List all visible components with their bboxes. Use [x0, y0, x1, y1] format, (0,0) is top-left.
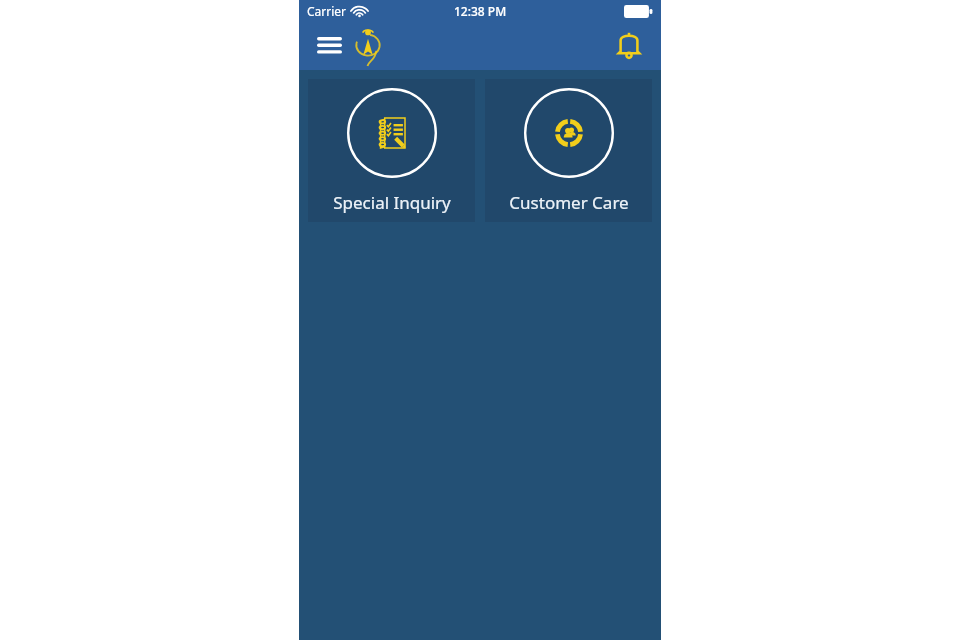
- staticText: Customer Care: [509, 191, 629, 214]
- staticText: Special Inquiry: [333, 191, 451, 214]
- button[interactable]: Menu: [311, 28, 347, 64]
- staticText: Carrier: [307, 3, 347, 19]
- button[interactable]: Notifications: [609, 26, 649, 66]
- staticText: 12:38 PM: [454, 3, 507, 19]
- button[interactable]: Customer Care: [485, 79, 652, 222]
- button[interactable]: Special Inquiry: [308, 79, 475, 222]
